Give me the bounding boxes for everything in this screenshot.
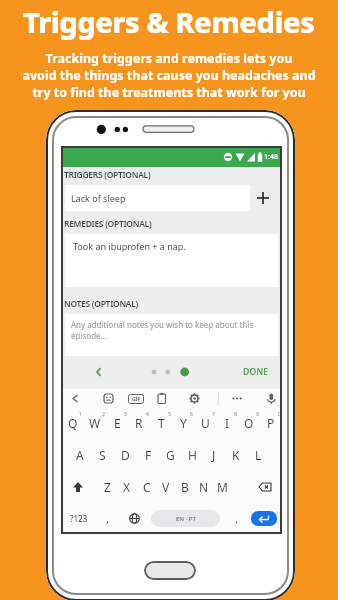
button[interactable]: C [137,471,156,503]
button[interactable]: ?123 [64,503,94,534]
staticText: 6 [190,411,193,418]
staticText: Triggers & Remedies [23,2,315,41]
staticText: 1 [79,411,82,418]
staticText: Q [68,415,78,431]
staticText: Lack of sleep [71,192,126,204]
button[interactable] [256,191,270,205]
staticText: 2 [102,411,105,418]
staticText: Tracking triggers and remedies lets you … [22,50,316,101]
button[interactable]: V [156,471,175,503]
button[interactable]: A [68,439,91,471]
staticText: A [76,447,84,463]
staticText: V [162,479,170,495]
button[interactable]: DONE [239,365,273,379]
button[interactable]: H [181,439,203,471]
button[interactable]: D [114,439,137,471]
staticText: , [106,511,109,526]
staticText: Any additional notes you wish to keep ab… [71,319,254,341]
button[interactable]: EN · PT [151,510,220,527]
button[interactable] [93,366,105,378]
button[interactable]: X [117,471,137,503]
button[interactable]: T [150,407,172,439]
staticText: P [267,415,275,431]
staticText: L [255,447,262,463]
button[interactable]: N [194,471,213,503]
staticText: T [158,415,165,431]
staticText: 1:48 [264,152,278,162]
staticText: GIF [132,396,141,403]
staticText: O [244,415,254,431]
button[interactable]: O [238,407,260,439]
staticText: W [89,415,101,431]
staticText: TRIGGERS (OPTIONAL) [64,169,151,181]
staticText: 9 [256,411,259,418]
staticText: F [145,447,152,463]
staticText: N [199,479,209,495]
button[interactable]: K [225,439,247,471]
staticText: S [99,447,106,463]
button[interactable]: Y [172,407,194,439]
staticText: 4 [146,411,149,418]
staticText: X [123,479,131,495]
staticText: NOTES (OPTIONAL) [64,298,139,310]
button[interactable]: E [106,407,128,439]
staticText: 0 [278,411,281,418]
button[interactable]: Any additional notes you wish to keep ab… [65,314,278,356]
button[interactable]: . [223,503,249,534]
button[interactable]: U [194,407,216,439]
staticText: Took an ibuprofen + a nap. [73,240,186,252]
button[interactable] [144,561,196,580]
staticText: K [232,447,240,463]
button[interactable]: I [216,407,238,439]
button[interactable]: R [128,407,150,439]
button[interactable] [120,503,148,534]
staticText: 7 [212,411,215,418]
staticText: U [201,415,210,431]
button[interactable] [65,471,91,503]
button[interactable] [251,511,277,526]
staticText: Z [104,479,111,495]
staticText: I [225,415,230,431]
staticText: E [114,415,121,431]
button[interactable]: F [137,439,159,471]
button[interactable]: G [159,439,181,471]
button[interactable]: M [213,471,232,503]
staticText: 3 [124,411,127,418]
staticText: 5 [168,411,171,418]
staticText: C [143,479,151,495]
button[interactable]: P [260,407,282,439]
button[interactable]: B [175,471,194,503]
staticText: ?123 [70,513,88,524]
staticText: 8 [234,411,237,418]
button[interactable]: , [94,503,120,534]
staticText: B [181,479,189,495]
staticText: R [135,415,143,431]
button[interactable]: Took an ibuprofen + a nap. [65,234,278,287]
staticText: H [188,447,197,463]
button[interactable]: Q [61,407,84,439]
staticText: . [235,511,238,526]
staticText: EN · PT [176,515,196,523]
staticText: J [212,447,216,463]
button[interactable]: Lack of sleep [65,185,250,211]
button[interactable]: Z [97,471,117,503]
button[interactable]: S [91,439,114,471]
button[interactable]: L [247,439,269,471]
button[interactable]: W [84,407,106,439]
button[interactable]: J [203,439,225,471]
button[interactable] [252,471,278,503]
staticText: M [217,479,228,495]
staticText: Y [180,415,187,431]
staticText: G [166,447,175,463]
staticText: D [121,447,130,463]
staticText: DONE [243,366,269,378]
staticText: REMEDIES (OPTIONAL) [64,218,152,230]
